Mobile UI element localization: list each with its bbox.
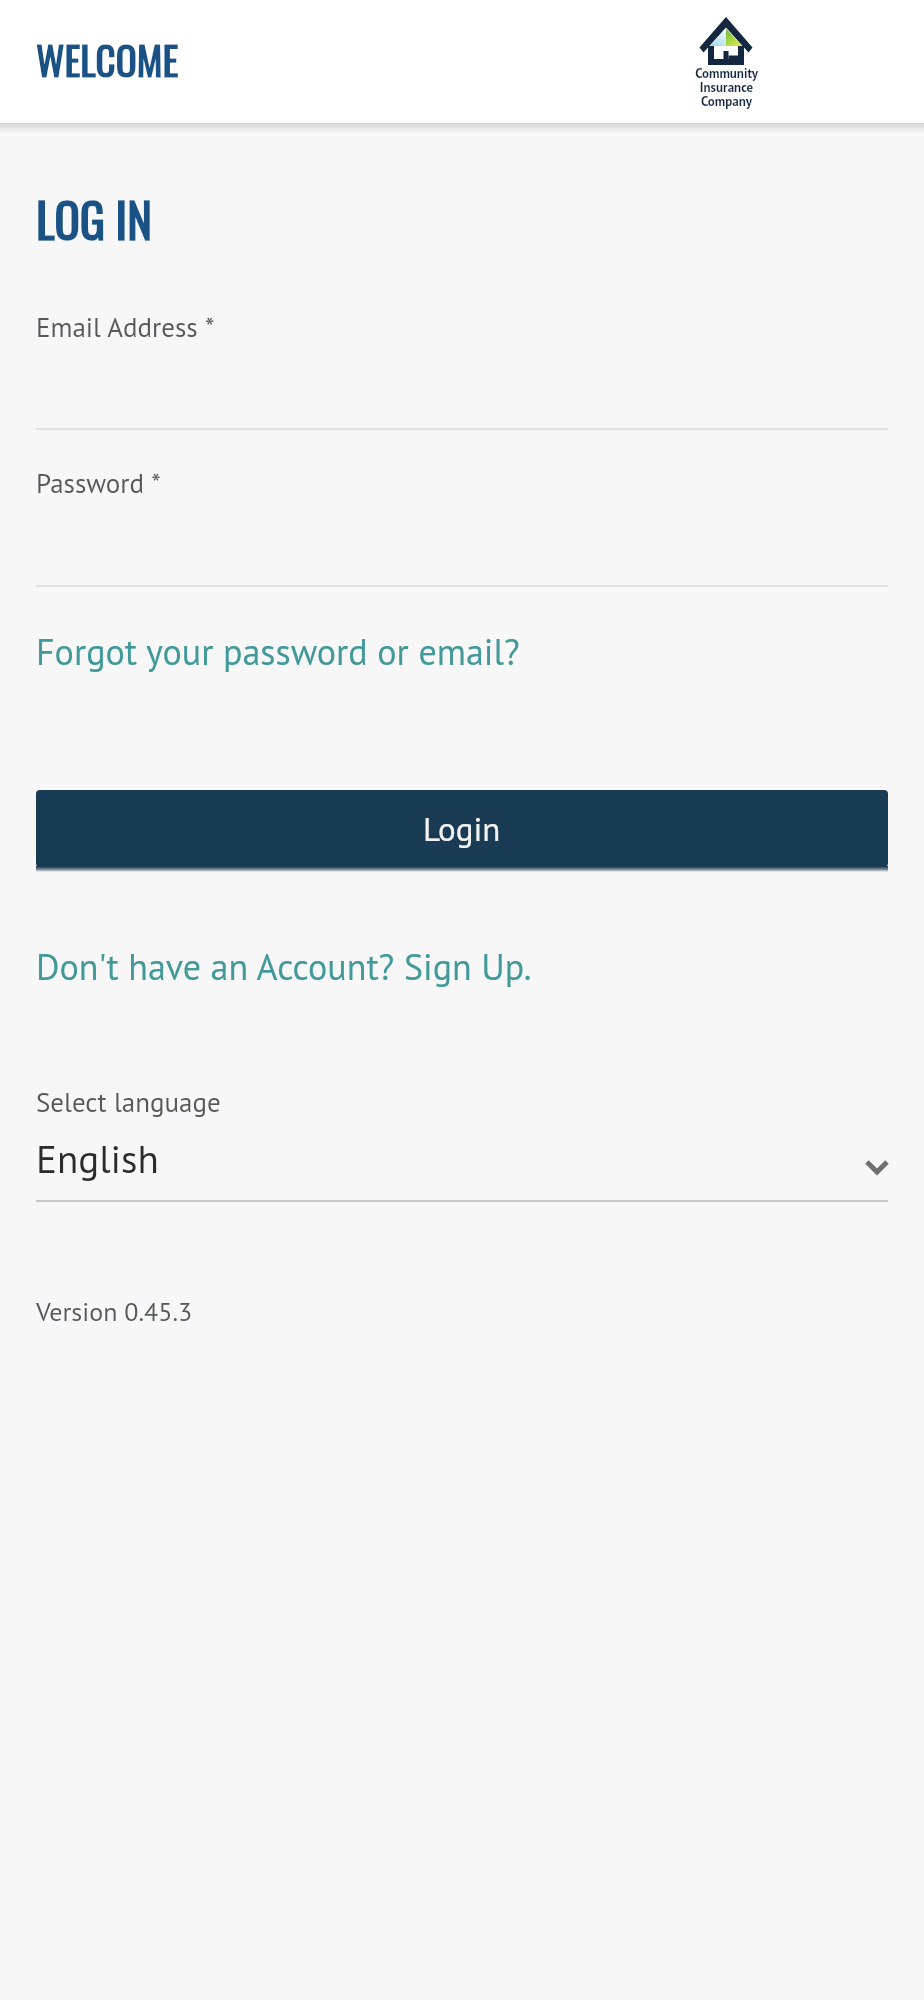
- staticText: WELCOME: [36, 30, 179, 88]
- staticText: English: [36, 1133, 159, 1183]
- button[interactable]: Login: [36, 790, 888, 867]
- button[interactable]: Don't have an Account? Sign Up.: [36, 936, 532, 996]
- button[interactable]: English: [36, 1124, 888, 1192]
- staticText: Email Address *: [36, 310, 215, 345]
- staticText: Select language: [36, 1085, 221, 1120]
- staticText: LOG IN: [36, 184, 153, 244]
- button[interactable]: Forgot your password or email?: [36, 621, 520, 681]
- staticText: Password *: [36, 466, 161, 501]
- staticText: Community Insurance Company: [695, 65, 758, 110]
- staticText: Don't have an Account? Sign Up.: [36, 943, 532, 990]
- staticText: Login: [423, 807, 501, 850]
- button[interactable]: [36, 340, 888, 430]
- staticText: Version 0.45.3: [36, 1295, 193, 1329]
- staticText: Forgot your password or email?: [36, 628, 520, 675]
